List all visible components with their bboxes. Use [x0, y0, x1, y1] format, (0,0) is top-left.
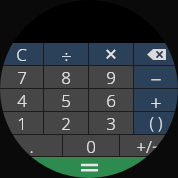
- staticText: −: [150, 66, 162, 88]
- staticText: +/−: [136, 135, 162, 156]
- button[interactable]: Equals: [0, 157, 178, 178]
- staticText: 7: [17, 66, 27, 88]
- button[interactable]: +: [134, 89, 178, 111]
- button[interactable]: −: [134, 66, 178, 88]
- button[interactable]: ✕: [89, 43, 133, 65]
- staticText: 2: [61, 112, 71, 134]
- staticText: ( ): [149, 112, 163, 134]
- staticText: 1: [17, 112, 27, 134]
- button[interactable]: ÷: [44, 43, 88, 65]
- button[interactable]: 3: [89, 112, 133, 134]
- staticText: +: [150, 89, 162, 111]
- staticText: ✕: [104, 45, 118, 64]
- button[interactable]: .: [0, 135, 62, 156]
- staticText: C: [16, 43, 27, 65]
- button[interactable]: 4: [0, 89, 43, 111]
- button[interactable]: Backspace: [134, 43, 178, 65]
- staticText: 5: [61, 89, 71, 111]
- staticText: 8: [61, 66, 71, 88]
- staticText: 9: [106, 66, 116, 88]
- staticText: ÷: [61, 43, 72, 65]
- button[interactable]: 6: [89, 89, 133, 111]
- button[interactable]: 8: [44, 66, 88, 88]
- button[interactable]: 5: [44, 89, 88, 111]
- button[interactable]: 9: [89, 66, 133, 88]
- button[interactable]: 1: [0, 112, 43, 134]
- staticText: 0: [86, 135, 96, 156]
- button[interactable]: 0: [63, 135, 119, 156]
- staticText: 6: [106, 89, 116, 111]
- staticText: .: [29, 135, 34, 156]
- button[interactable]: +/−: [120, 135, 178, 156]
- button[interactable]: 2: [44, 112, 88, 134]
- staticText: 3: [106, 112, 116, 134]
- staticText: 4: [17, 89, 27, 111]
- button[interactable]: ( ): [134, 112, 178, 134]
- button[interactable]: 7: [0, 66, 43, 88]
- button[interactable]: C: [0, 43, 43, 65]
